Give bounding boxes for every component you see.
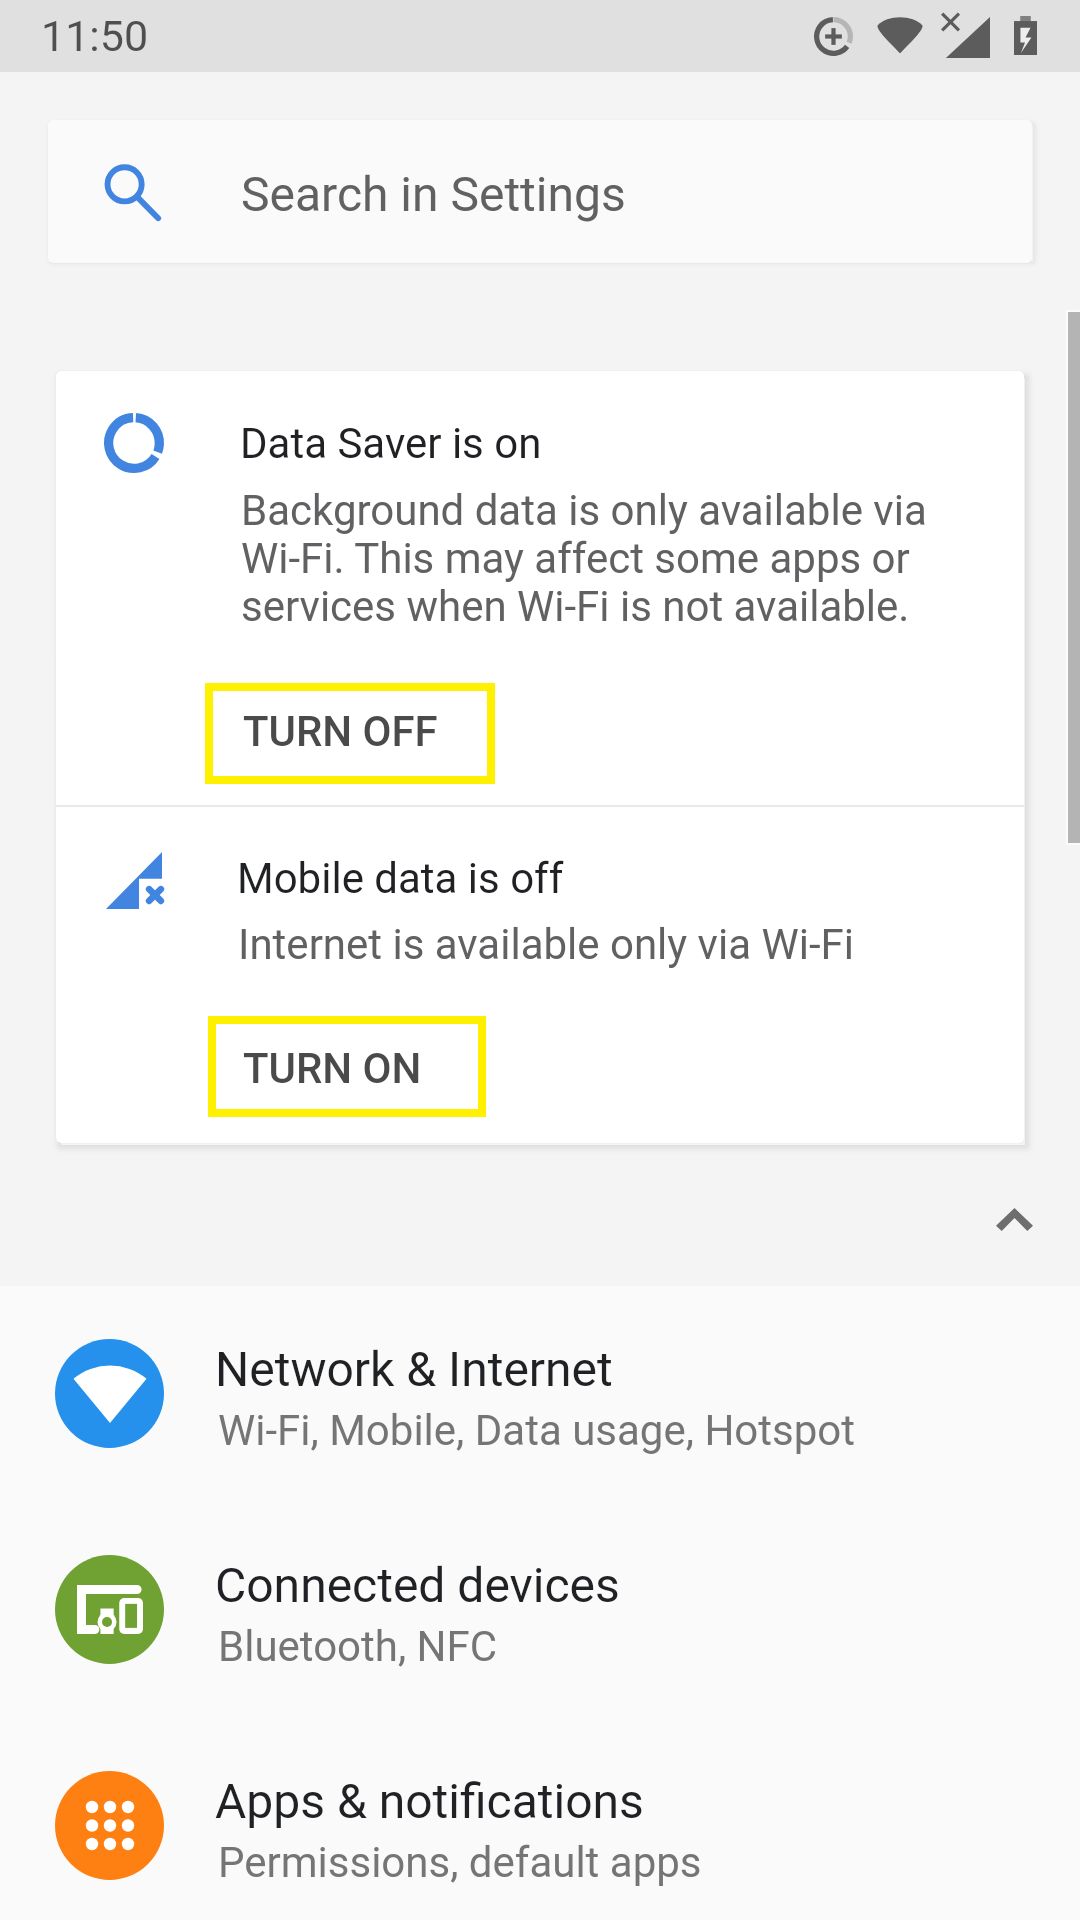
staticText: Permissions, default apps xyxy=(218,1837,702,1887)
staticText: TURN OFF xyxy=(243,707,438,756)
staticText: TURN ON xyxy=(243,1044,422,1093)
staticText: Background data is only available via Wi… xyxy=(241,487,927,631)
staticText: Search in Settings xyxy=(241,167,626,223)
staticText: Network & Internet xyxy=(215,1340,613,1398)
staticText: Connected devices xyxy=(215,1556,620,1614)
button[interactable]: TURN OFF xyxy=(205,683,495,784)
button[interactable]: Network & Internet xyxy=(0,1286,1080,1502)
button[interactable] xyxy=(56,807,1024,1141)
staticText: 11:50 xyxy=(41,16,149,60)
staticText: Data Saver is on xyxy=(240,418,542,468)
staticText: Bluetooth, NFC xyxy=(218,1621,498,1671)
button[interactable]: TURN ON xyxy=(208,1016,486,1117)
button[interactable] xyxy=(56,371,1024,805)
staticText: Mobile data is off xyxy=(237,853,564,903)
staticText: Wi-Fi, Mobile, Data usage, Hotspot xyxy=(218,1405,856,1455)
staticText: Internet is available only via Wi-Fi xyxy=(238,921,854,969)
button[interactable]: Apps & notifications xyxy=(0,1718,1080,1920)
button[interactable]: Search in Settings xyxy=(48,120,1032,263)
button[interactable]: Connected devices xyxy=(0,1502,1080,1718)
button[interactable]: Collapse suggestions xyxy=(967,1172,1061,1266)
staticText: Apps & notifications xyxy=(215,1772,644,1830)
